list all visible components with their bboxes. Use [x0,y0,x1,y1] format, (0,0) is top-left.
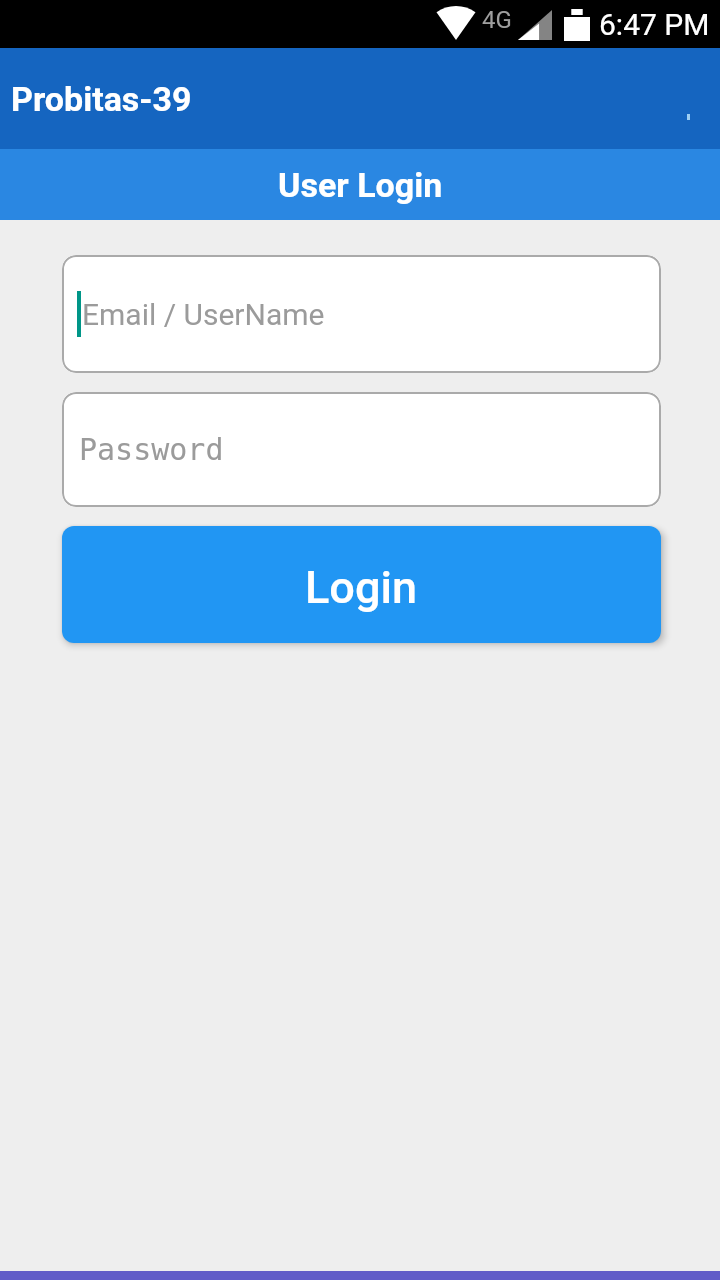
staticText: 6:47 PM [599,7,710,42]
staticText: User Login [278,165,443,205]
button[interactable]: Password [62,392,661,507]
staticText: Login [305,561,418,614]
staticText: Probitas-39 [11,79,192,119]
staticText: 4G [482,6,512,34]
staticText: Email / UserName [82,297,325,332]
button[interactable]: Email / UserName [62,255,661,373]
staticText: Password [79,432,224,467]
button[interactable]: Login [62,526,661,643]
